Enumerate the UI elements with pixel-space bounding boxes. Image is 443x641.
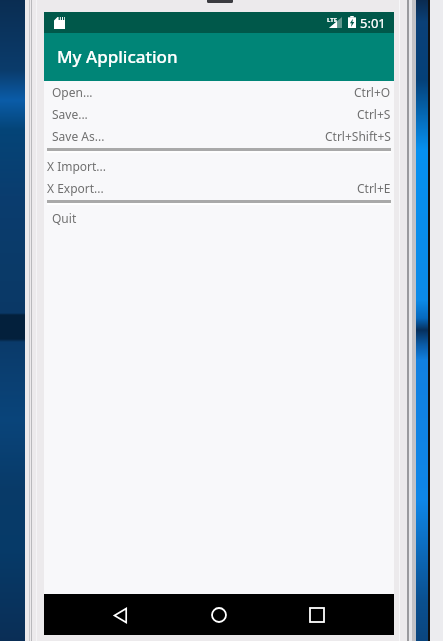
staticText: Ctrl+O: [354, 84, 391, 100]
staticText: Quit: [52, 210, 77, 226]
staticText: Ctrl+E: [357, 180, 391, 196]
button[interactable]: Quit: [44, 207, 394, 229]
staticText: Ctrl+Shift+S: [325, 128, 391, 144]
staticText: My Application: [57, 45, 178, 68]
button[interactable]: Open...: [44, 81, 394, 103]
button[interactable]: X Export...: [44, 177, 394, 199]
button[interactable]: Back: [102, 597, 138, 633]
button[interactable]: Save...: [44, 103, 394, 125]
staticText: Open...: [52, 84, 93, 100]
staticText: X Import...: [47, 158, 107, 174]
staticText: Save...: [52, 106, 88, 122]
staticText: 5:01: [360, 14, 386, 32]
button[interactable]: Save As...: [44, 125, 394, 147]
button[interactable]: Home: [201, 597, 237, 633]
button[interactable]: X Import...: [44, 155, 394, 177]
button[interactable]: Recents: [299, 597, 335, 633]
staticText: Ctrl+S: [357, 106, 391, 122]
staticText: X Export...: [47, 180, 104, 196]
staticText: LTE: [327, 16, 338, 24]
staticText: Save As...: [52, 128, 105, 144]
